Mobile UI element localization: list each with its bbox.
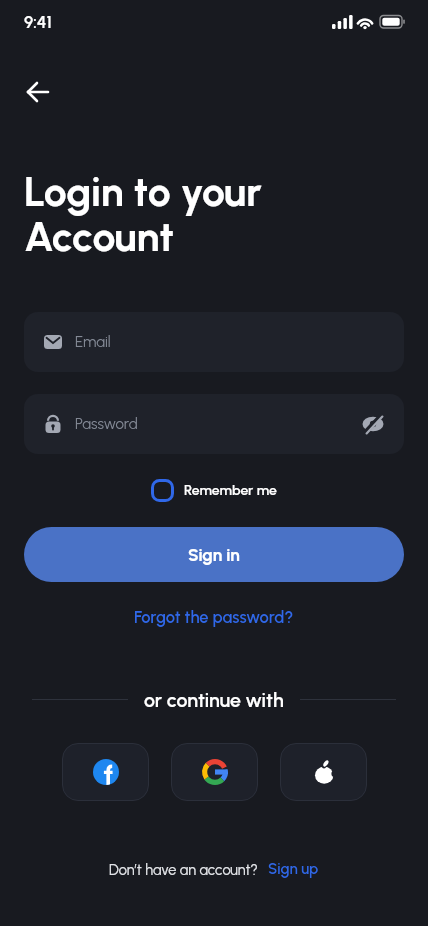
button[interactable]: Password — [24, 394, 404, 454]
staticText: Email — [75, 333, 111, 351]
button[interactable]: Don’t have an account? — [109, 860, 319, 878]
button[interactable]: Remember me — [151, 479, 277, 502]
staticText: Don’t have an account? — [109, 861, 258, 878]
button[interactable]: Sign in — [24, 527, 404, 582]
button[interactable] — [171, 743, 258, 801]
button[interactable] — [24, 78, 52, 106]
staticText: Password — [75, 415, 138, 433]
staticText: Sign up — [268, 860, 319, 878]
staticText: Sign in — [188, 545, 240, 565]
staticText: Forgot the password? — [134, 607, 294, 627]
staticText: Remember me — [184, 482, 277, 499]
button[interactable]: Forgot the password? — [134, 607, 294, 627]
button[interactable] — [62, 743, 149, 801]
staticText: or continue with — [144, 688, 284, 711]
staticText: 9:41 — [24, 12, 52, 32]
button[interactable]: Email — [24, 312, 404, 372]
staticText: Login to your Account — [24, 167, 262, 261]
button[interactable] — [280, 743, 367, 801]
